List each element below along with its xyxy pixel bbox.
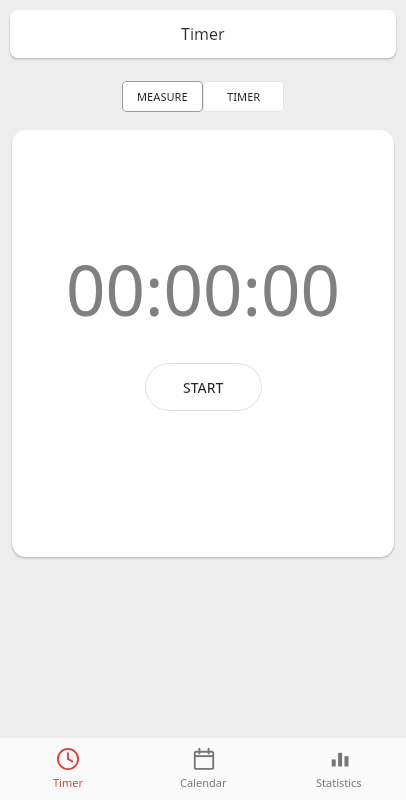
staticText: Statistics [316, 775, 362, 790]
button[interactable]: TIMER [203, 81, 284, 112]
staticText: START [183, 378, 224, 397]
staticText: 00:00:00 [66, 242, 340, 336]
button[interactable]: Statistics [271, 738, 406, 800]
button[interactable]: Calendar [136, 738, 271, 800]
button[interactable]: MEASURE [122, 81, 203, 112]
staticText: Timer [53, 775, 83, 790]
button[interactable]: Timer [0, 738, 136, 800]
button[interactable]: START [145, 363, 262, 411]
staticText: Calendar [180, 775, 227, 790]
staticText: MEASURE [137, 89, 188, 104]
staticText: TIMER [227, 89, 261, 104]
staticText: Timer [181, 23, 225, 45]
button[interactable]: Timer [10, 10, 396, 58]
